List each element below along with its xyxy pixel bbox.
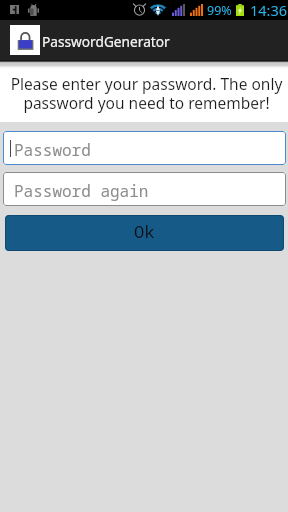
button[interactable]: Password again bbox=[3, 172, 286, 206]
staticText: Ok bbox=[134, 220, 155, 243]
staticText: PasswordGenerator bbox=[42, 32, 170, 51]
staticText: Password bbox=[14, 139, 91, 161]
staticText: Password again bbox=[14, 180, 149, 202]
button[interactable]: Password bbox=[3, 131, 286, 165]
staticText: 14:36 bbox=[250, 0, 288, 20]
staticText: 99% bbox=[207, 2, 232, 19]
button[interactable]: Ok bbox=[5, 215, 284, 251]
staticText: Please enter your password. The only pas… bbox=[10, 73, 283, 114]
